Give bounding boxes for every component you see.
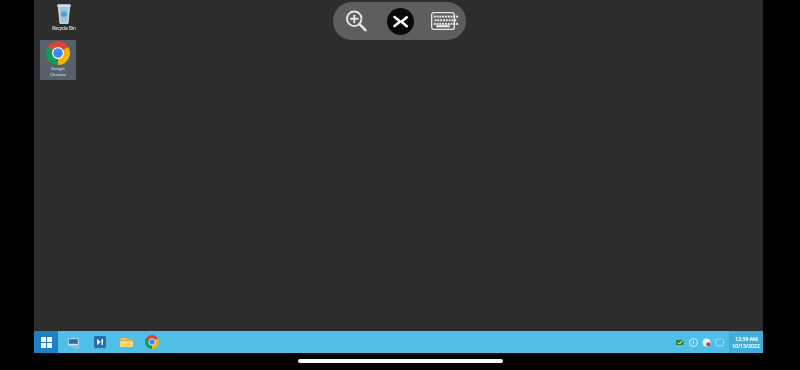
button[interactable]: Volume (687, 331, 700, 353)
button[interactable]: Remote Desktop app (87, 331, 113, 353)
button[interactable]: Google Chrome (139, 331, 165, 353)
staticText: Recycle Bin (40, 25, 88, 31)
button[interactable]: File Explorer (113, 331, 139, 353)
staticText: Google Chrome (40, 66, 76, 77)
button[interactable]: Security notification (674, 331, 687, 353)
button[interactable]: Action Center (713, 331, 726, 353)
button[interactable]: Google Chrome shortcut (40, 40, 76, 80)
button[interactable]: Recycle Bin (40, 2, 88, 38)
staticText: 10/13/2022 (732, 342, 760, 349)
button[interactable]: Zoom in (336, 2, 376, 40)
button[interactable]: Network (700, 331, 713, 353)
button[interactable]: Session menu (380, 2, 420, 40)
button[interactable]: Home gesture handle (298, 359, 503, 363)
button[interactable]: Remote Desktop Connection (61, 331, 87, 353)
button[interactable]: Start (34, 331, 58, 353)
button[interactable]: Show keyboard (423, 2, 463, 40)
staticText: 12:59 AM (735, 335, 758, 342)
button[interactable]: Date and time (732, 331, 760, 353)
